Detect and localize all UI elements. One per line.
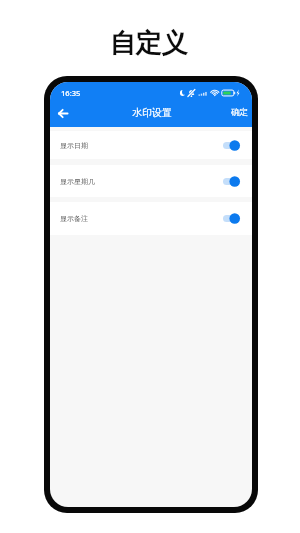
staticText: 自定义 xyxy=(0,27,297,60)
staticText: 确定 xyxy=(231,107,248,118)
button[interactable]: 显示备注 xyxy=(50,202,252,235)
staticText: 显示备注 xyxy=(60,214,88,223)
button[interactable]: 显示备注 开关 xyxy=(223,213,240,224)
button[interactable]: 显示日期 xyxy=(50,131,252,159)
staticText: 显示日期 xyxy=(60,141,88,150)
button[interactable]: Back xyxy=(52,102,74,124)
staticText: 显示星期几 xyxy=(60,177,95,186)
button[interactable]: 显示星期几 开关 xyxy=(223,176,240,187)
button[interactable]: 确定 xyxy=(225,103,252,122)
staticText: 16:35 xyxy=(61,88,81,98)
button[interactable]: 显示日期 开关 xyxy=(223,140,240,151)
staticText: 水印设置 xyxy=(132,106,172,119)
button[interactable]: 显示星期几 xyxy=(50,165,252,197)
